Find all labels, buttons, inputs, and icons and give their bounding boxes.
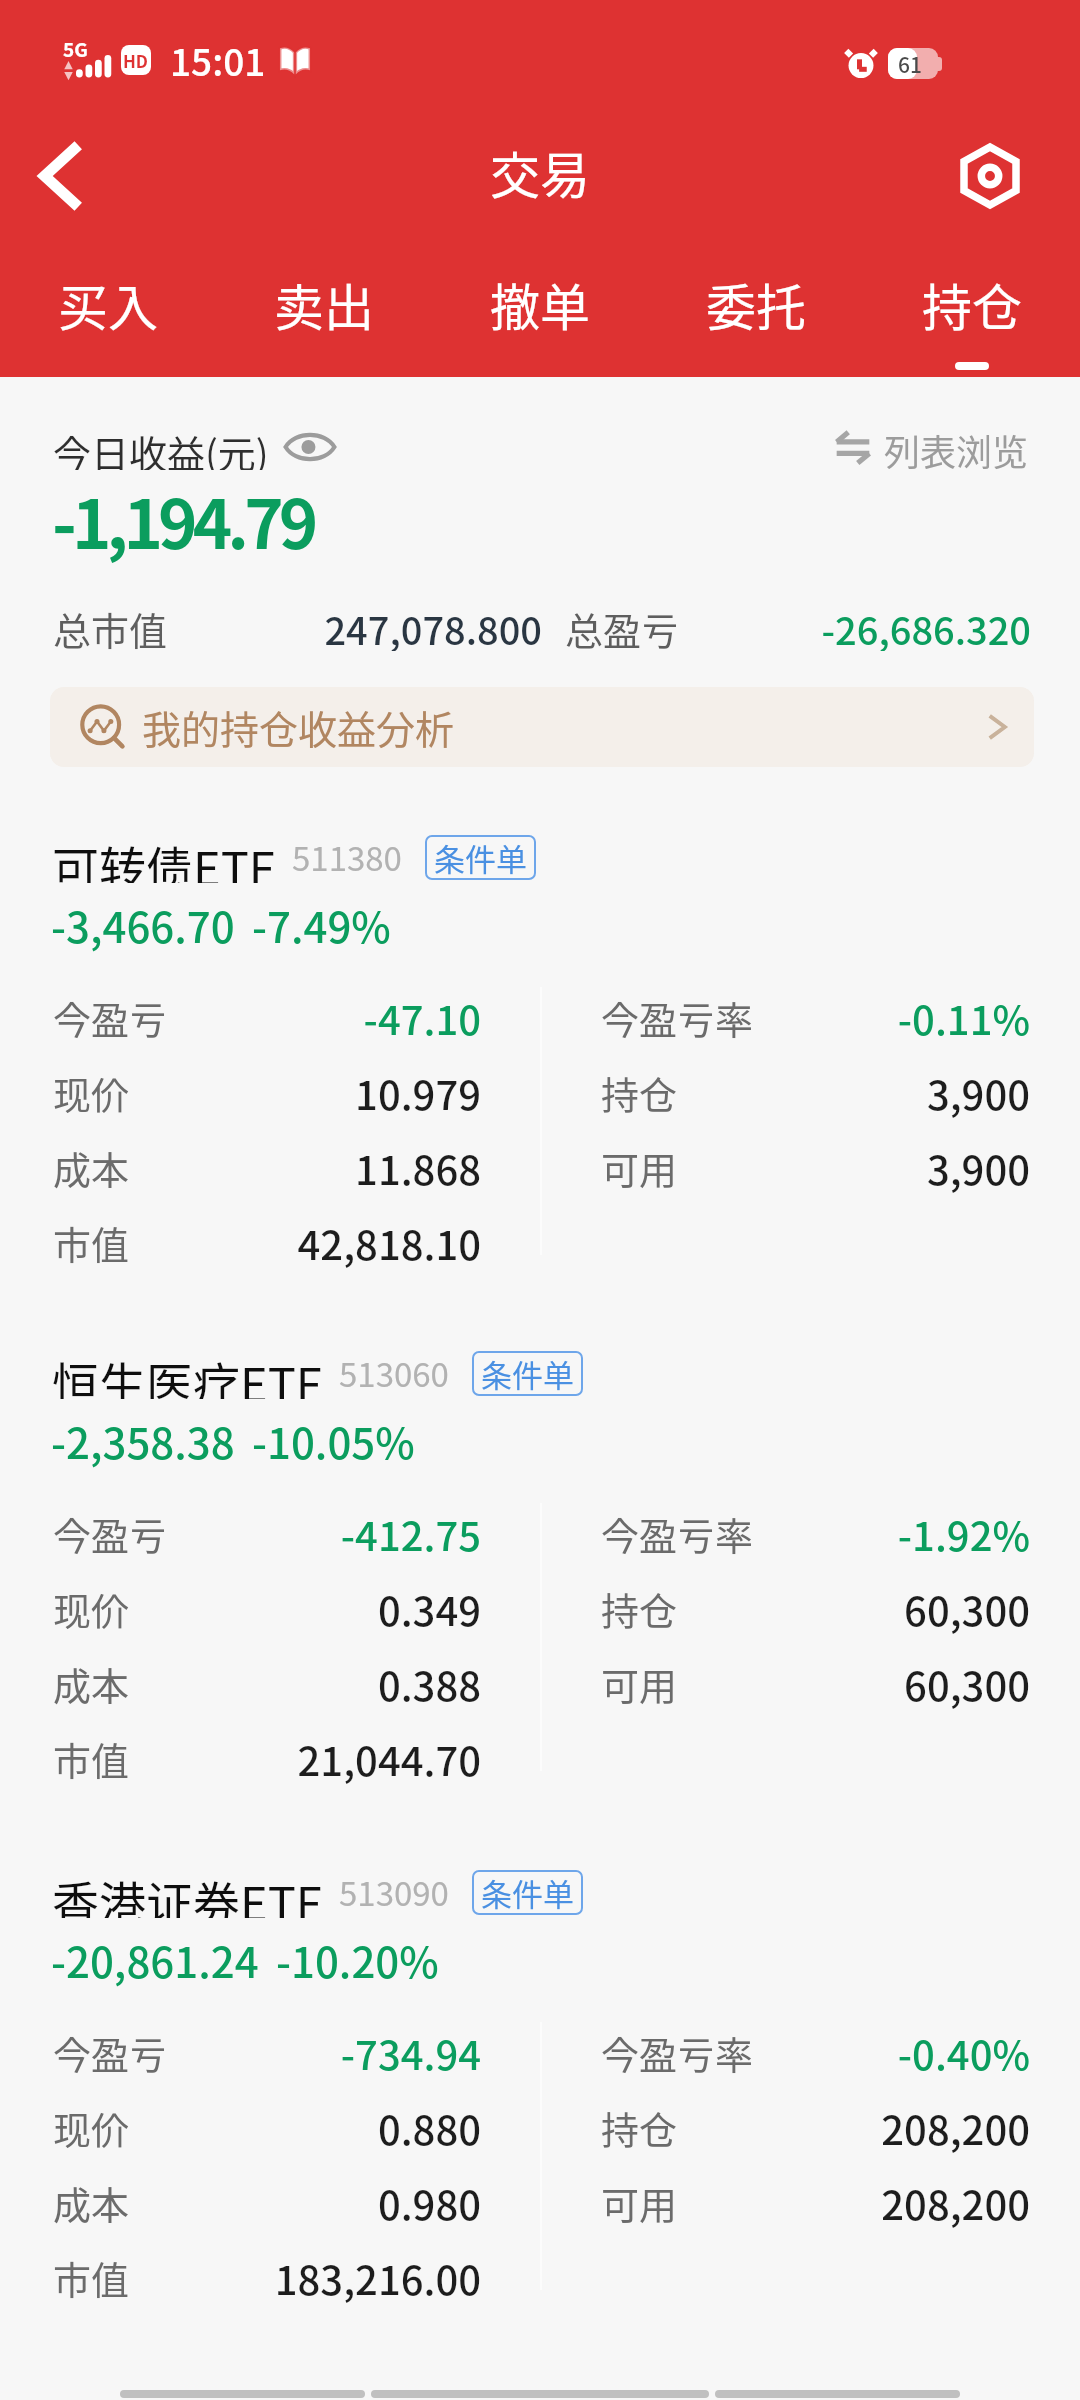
- staticText: 委托: [706, 268, 806, 340]
- button[interactable]: 条件单: [472, 1351, 583, 1396]
- staticText: 60,300: [740, 1580, 1030, 1638]
- staticText: 条件单: [434, 835, 527, 880]
- button[interactable]: Settings: [943, 129, 1037, 223]
- staticText: 条件单: [481, 1351, 574, 1396]
- staticText: 可用: [601, 1656, 678, 1711]
- staticText: -7.49%: [252, 894, 391, 955]
- staticText: 183,216.00: [180, 2249, 481, 2307]
- staticText: 总市值: [53, 601, 168, 651]
- button[interactable]: 可转债ETF: [0, 831, 1080, 1280]
- staticText: 60,300: [740, 1655, 1030, 1713]
- staticText: 511380: [292, 833, 402, 881]
- staticText: 今盈亏率: [601, 990, 754, 1045]
- staticText: 5G: [63, 35, 88, 63]
- staticText: -26,686.320: [760, 601, 1031, 651]
- staticText: 可转债ETF: [52, 831, 275, 883]
- staticText: 我的持仓收益分析: [142, 699, 455, 755]
- staticText: 3,900: [740, 1139, 1030, 1197]
- staticText: 持仓: [601, 1581, 678, 1636]
- button[interactable]: 卖出: [216, 248, 432, 377]
- button[interactable]: 委托: [648, 248, 864, 377]
- staticText: 10.979: [180, 1064, 481, 1122]
- staticText: 今盈亏率: [601, 1506, 754, 1561]
- staticText: 3,900: [740, 1064, 1030, 1122]
- button[interactable]: 香港证券ETF: [0, 1866, 1080, 2315]
- staticText: -47.10: [180, 989, 481, 1047]
- staticText: 61: [898, 49, 922, 79]
- button[interactable]: 条件单: [472, 1870, 583, 1915]
- staticText: 市值: [53, 1215, 130, 1270]
- staticText: -10.05%: [252, 1410, 415, 1471]
- staticText: -1,194.79: [52, 471, 314, 568]
- staticText: -3,466.70: [51, 894, 235, 955]
- staticText: 208,200: [740, 2174, 1030, 2232]
- staticText: 0.349: [180, 1580, 481, 1638]
- staticText: -734.94: [180, 2024, 481, 2082]
- button[interactable]: Toggle balance visibility: [283, 424, 337, 470]
- staticText: HD: [123, 48, 149, 73]
- staticText: -0.11%: [740, 989, 1030, 1047]
- button[interactable]: 撤单: [432, 248, 648, 377]
- staticText: 现价: [53, 1065, 130, 1120]
- staticText: 今日收益(元): [53, 424, 269, 470]
- staticText: 持仓: [601, 2100, 678, 2155]
- staticText: 交易: [490, 136, 590, 208]
- button[interactable]: 列表浏览: [836, 424, 1029, 470]
- staticText: 卖出: [274, 268, 374, 340]
- staticText: 可用: [601, 2175, 678, 2230]
- staticText: 今盈亏率: [601, 2025, 754, 2080]
- staticText: 11.868: [180, 1139, 481, 1197]
- staticText: 条件单: [481, 1870, 574, 1915]
- staticText: 可用: [601, 1140, 678, 1195]
- staticText: 列表浏览: [884, 424, 1029, 470]
- staticText: 现价: [53, 2100, 130, 2155]
- button[interactable]: Back: [13, 129, 107, 223]
- button[interactable]: 恒生医疗ETF: [0, 1347, 1080, 1796]
- staticText: 买入: [58, 268, 158, 340]
- staticText: -1.92%: [740, 1505, 1030, 1563]
- staticText: -0.40%: [740, 2024, 1030, 2082]
- staticText: 现价: [53, 1581, 130, 1636]
- button[interactable]: 买入: [0, 248, 216, 377]
- staticText: 市值: [53, 2250, 130, 2305]
- staticText: 0.880: [180, 2099, 481, 2157]
- staticText: 成本: [53, 2175, 130, 2230]
- staticText: -10.20%: [276, 1929, 439, 1990]
- staticText: 513090: [339, 1868, 449, 1916]
- staticText: 香港证券ETF: [52, 1866, 322, 1918]
- button[interactable]: 持仓: [864, 248, 1080, 377]
- staticText: 成本: [53, 1140, 130, 1195]
- staticText: 0.388: [180, 1655, 481, 1713]
- staticText: 撤单: [490, 268, 590, 340]
- staticText: 恒生医疗ETF: [52, 1347, 322, 1399]
- staticText: 208,200: [740, 2099, 1030, 2157]
- button[interactable]: Home: [371, 2390, 709, 2398]
- staticText: 15:01: [170, 33, 266, 87]
- staticText: -20,861.24: [51, 1929, 259, 1990]
- staticText: -412.75: [180, 1505, 481, 1563]
- button[interactable]: Recent apps: [120, 2390, 365, 2398]
- staticText: 今盈亏: [53, 990, 168, 1045]
- button[interactable]: 我的持仓收益分析: [50, 687, 1034, 767]
- staticText: 市值: [53, 1731, 130, 1786]
- staticText: 21,044.70: [180, 1730, 481, 1788]
- button[interactable]: 条件单: [425, 835, 536, 880]
- button[interactable]: Back: [715, 2390, 960, 2398]
- staticText: -2,358.38: [51, 1410, 235, 1471]
- staticText: 513060: [339, 1349, 449, 1397]
- staticText: 42,818.10: [180, 1214, 481, 1272]
- staticText: 247,078.800: [280, 601, 542, 651]
- staticText: 0.980: [180, 2174, 481, 2232]
- staticText: 持仓: [922, 268, 1022, 340]
- staticText: 今盈亏: [53, 1506, 168, 1561]
- staticText: 总盈亏: [565, 601, 680, 651]
- staticText: 成本: [53, 1656, 130, 1711]
- staticText: 今盈亏: [53, 2025, 168, 2080]
- staticText: 持仓: [601, 1065, 678, 1120]
